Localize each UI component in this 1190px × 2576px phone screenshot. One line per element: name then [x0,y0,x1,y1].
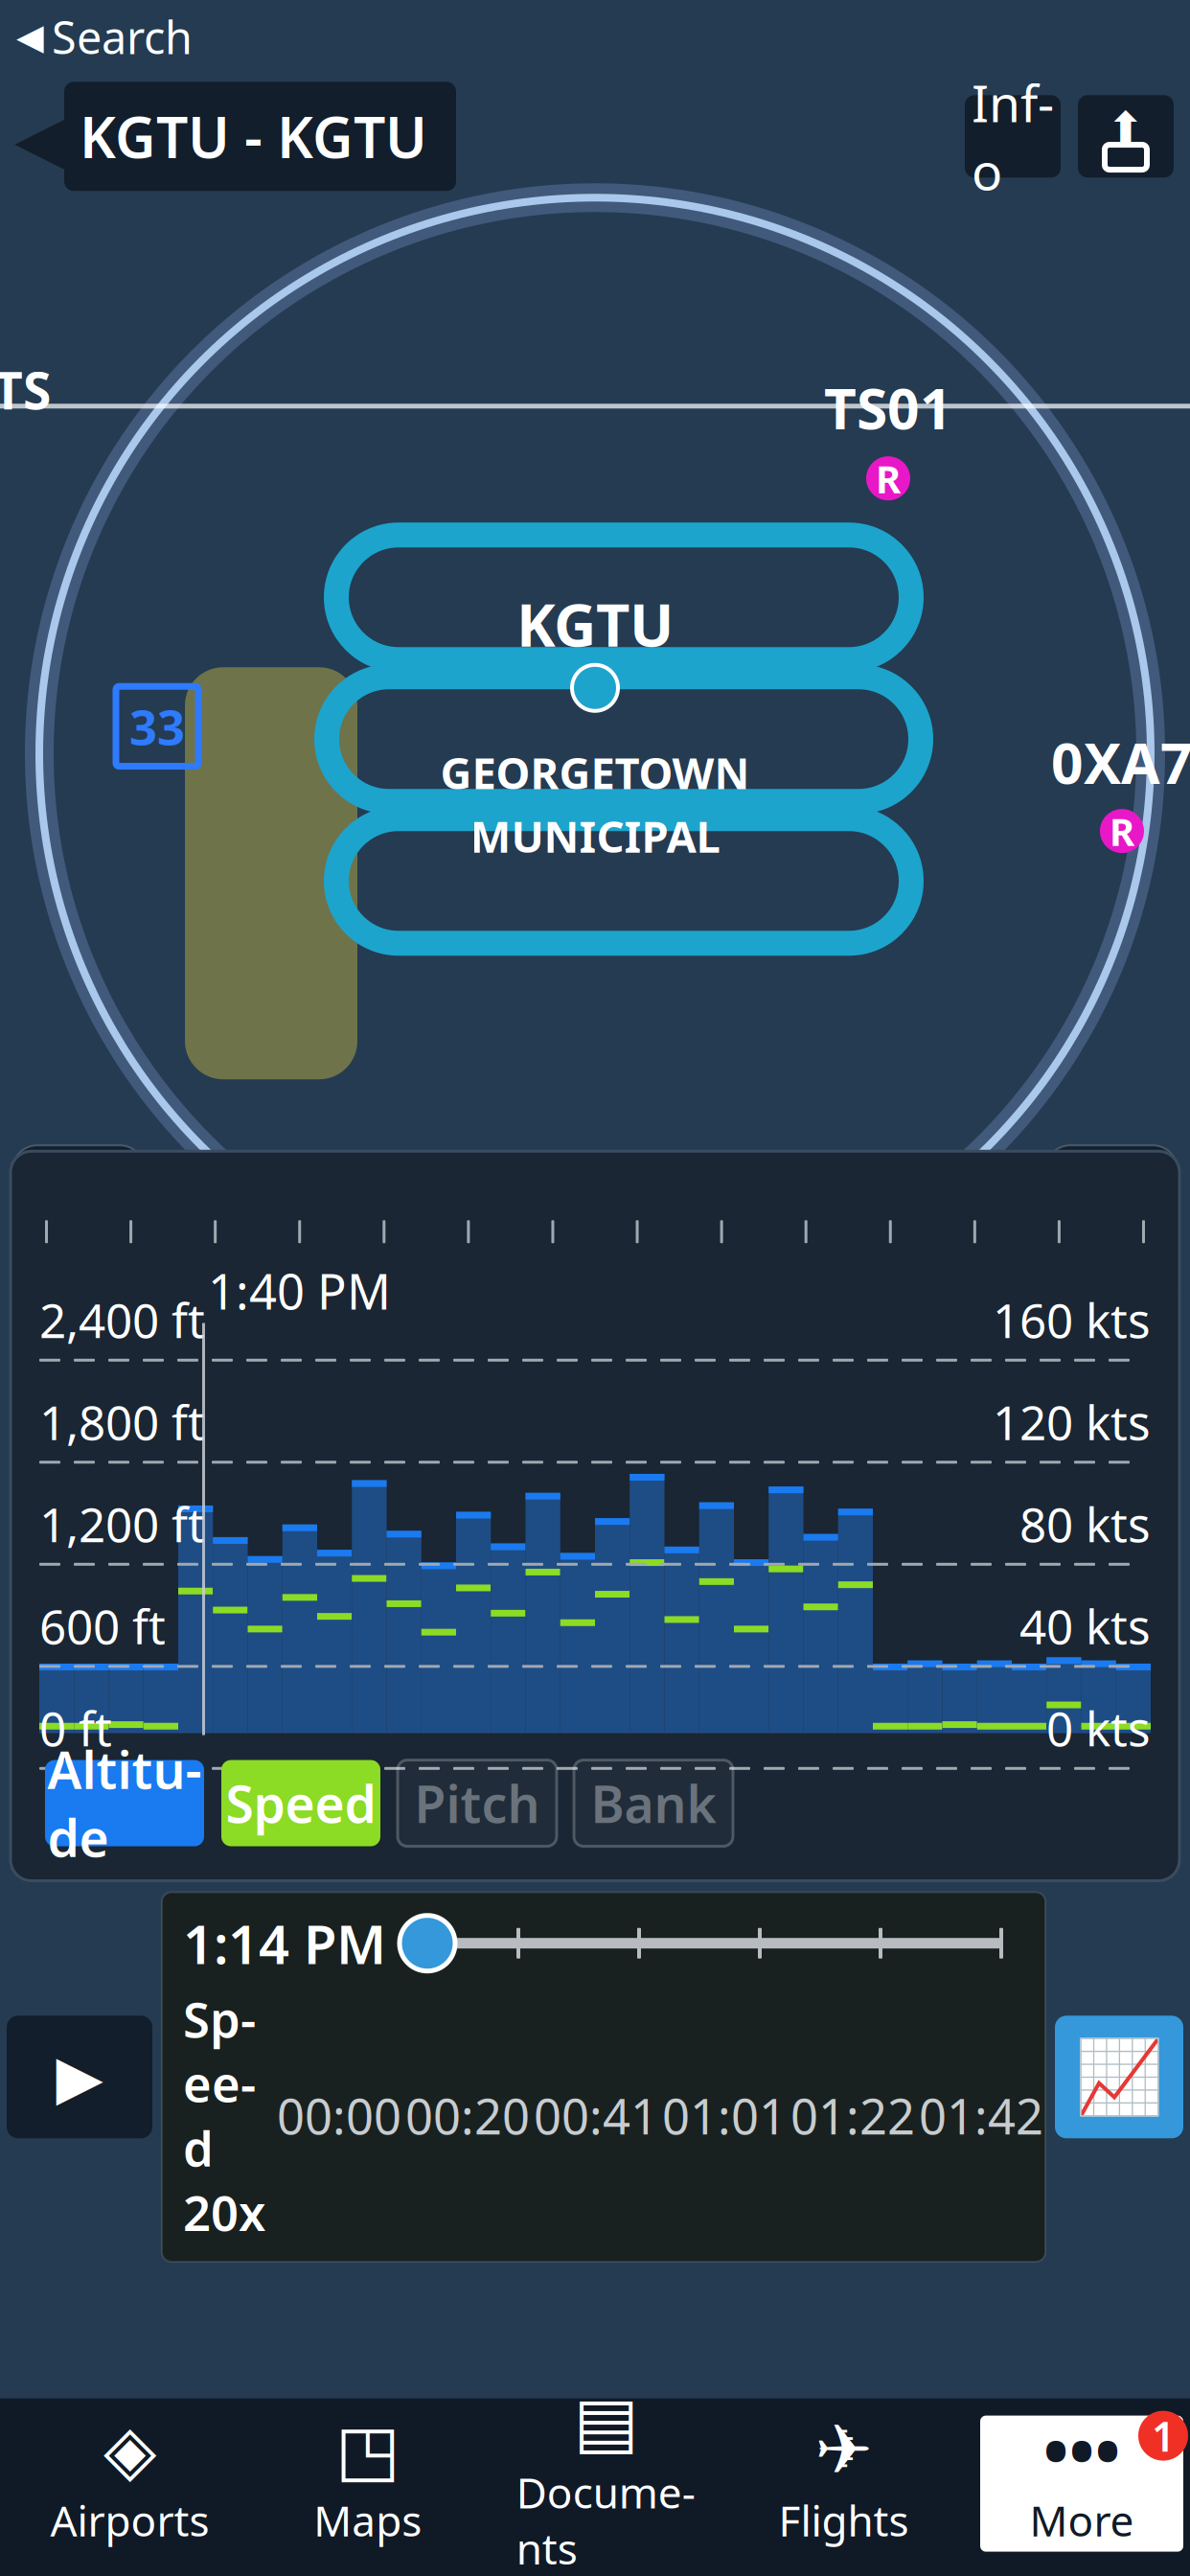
staticText: Airports [50,2492,209,2548]
staticText: 0XA7 [1051,725,1190,799]
button[interactable]: ✈ [742,2416,945,2552]
staticText: ✈ [815,2411,872,2489]
button[interactable]: ◀ [1,3,208,70]
staticText: KGTU [516,585,674,663]
staticText: 1,800 ft [39,1390,205,1453]
staticText: Flights [779,2492,909,2548]
button[interactable]: 1:14 PM [162,1892,1045,2262]
button[interactable]: Altitude [45,1760,204,1846]
staticText: 33 [129,694,185,759]
staticText: ⬆ [1108,103,1144,152]
staticText: 3D [1070,1169,1153,1254]
staticText: ◳ [335,2411,400,2489]
staticText: R [876,453,901,504]
staticText: ◈ [103,2411,156,2489]
button[interactable]: ▤ [504,2416,707,2552]
staticText: GEORGETOWN [440,743,750,801]
staticText: R [1110,806,1134,856]
staticText: TS01 [824,370,952,445]
button[interactable]: Share [1078,95,1174,178]
staticText: 01:22 [790,2083,915,2148]
staticText: 01:42 [919,2083,1043,2148]
staticText: 01:01 [662,2083,787,2148]
button[interactable]: Toggle chart [1055,2016,1183,2138]
button[interactable]: ◳ [266,2416,469,2552]
staticText: ▶ [56,2042,103,2112]
staticText: 40 kts [1019,1594,1151,1657]
button[interactable]: Play [7,2016,152,2138]
staticText: 120 kts [993,1390,1151,1453]
staticText: 160 kts [993,1288,1151,1351]
staticText: ▤ [573,2383,638,2461]
staticText: Speed [226,1769,376,1837]
staticText: 2,400 ft [39,1288,205,1351]
staticText: 📈 [1075,2036,1164,2118]
staticText: Bank [591,1769,716,1837]
staticText: Info [972,69,1054,204]
staticText: Altitude [47,1735,202,1871]
staticText: MUNICIPAL [470,807,720,865]
button[interactable]: Speed [221,1760,380,1846]
button[interactable]: Pitch [398,1760,557,1846]
staticText: 80 kts [1019,1492,1151,1555]
button[interactable]: 3D [1045,1145,1178,1278]
staticText: 1,200 ft [39,1492,205,1555]
staticText: Documents [516,2464,695,2576]
button[interactable]: ••• [980,2416,1183,2552]
staticText: ◀ [14,83,87,190]
staticText: 0 kts [1046,1697,1151,1759]
staticText: TS [0,356,51,424]
button[interactable]: ◀ [14,82,456,191]
staticText: 00:20 [405,2083,530,2148]
staticText: ◀ [16,16,44,57]
staticText: ••• [1043,2404,1121,2496]
button[interactable]: Bank [574,1760,733,1846]
staticText: 00:41 [534,2083,658,2148]
staticText: Speed 20x [183,1987,265,2244]
staticText: Search [52,7,193,67]
staticText: More [1030,2492,1134,2548]
staticText: 600 ft [39,1594,166,1657]
staticText: 0 ft [39,1697,112,1759]
staticText: KGTU - KGTU [80,99,427,174]
button[interactable]: ◈ [28,2416,231,2552]
staticText: 00:00 [277,2083,401,2148]
staticText: 1 [1152,2409,1175,2463]
staticText: 1:14 PM [183,1908,386,1979]
staticText: Pitch [414,1769,540,1837]
button[interactable]: Info [965,95,1061,178]
staticText: Maps [314,2492,422,2548]
button[interactable]: Route [12,1145,145,1278]
staticText: 1:40 PM [208,1259,391,1323]
